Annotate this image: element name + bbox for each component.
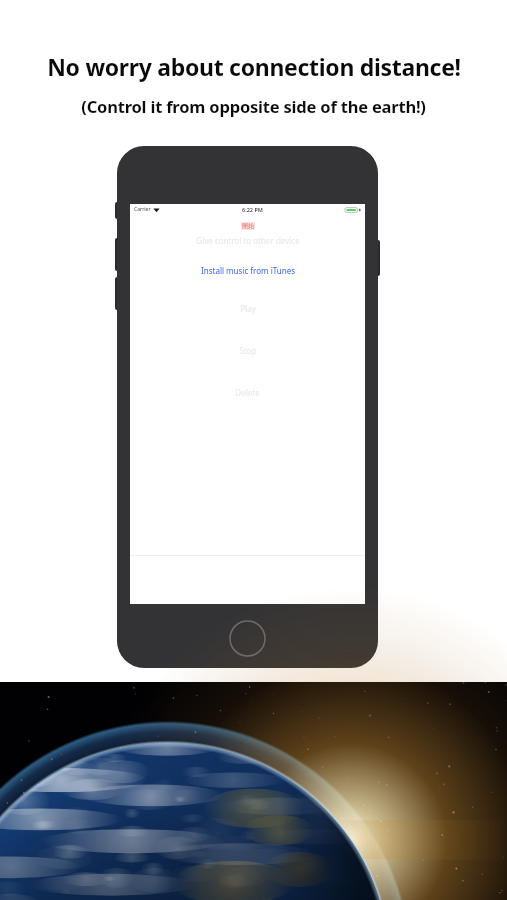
staticText: Carrier [134, 206, 151, 213]
button[interactable]: Give control to other device [130, 234, 365, 246]
staticText: Install music from iTunes [201, 265, 295, 276]
staticText: 開始 [242, 222, 254, 230]
staticText: Stop [239, 345, 257, 356]
staticText: Delete [235, 387, 260, 398]
button[interactable]: 開始 [242, 222, 254, 230]
staticText: (Control it from opposite side of the ea… [81, 95, 426, 117]
button[interactable]: Home [229, 620, 266, 657]
staticText: No worry about connection distance! [47, 51, 461, 82]
staticText: Play [240, 303, 256, 314]
staticText: Give control to other device [196, 235, 300, 246]
button[interactable]: Install music from iTunes [130, 264, 365, 276]
staticText: 6:22 PM [242, 206, 263, 213]
